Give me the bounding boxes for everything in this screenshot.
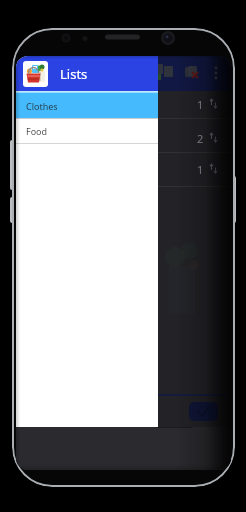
button[interactable] [189, 402, 218, 421]
button[interactable] [185, 66, 199, 79]
staticText: Food [26, 125, 48, 137]
staticText: 2 [197, 131, 204, 146]
staticText: Clothes [26, 100, 58, 112]
button[interactable]: Food [16, 119, 158, 143]
button[interactable] [211, 64, 221, 84]
button[interactable]: Clothes [16, 93, 158, 118]
staticText: 1 [197, 97, 204, 112]
staticText: Lists [60, 65, 88, 83]
staticText: 1 [197, 162, 204, 177]
